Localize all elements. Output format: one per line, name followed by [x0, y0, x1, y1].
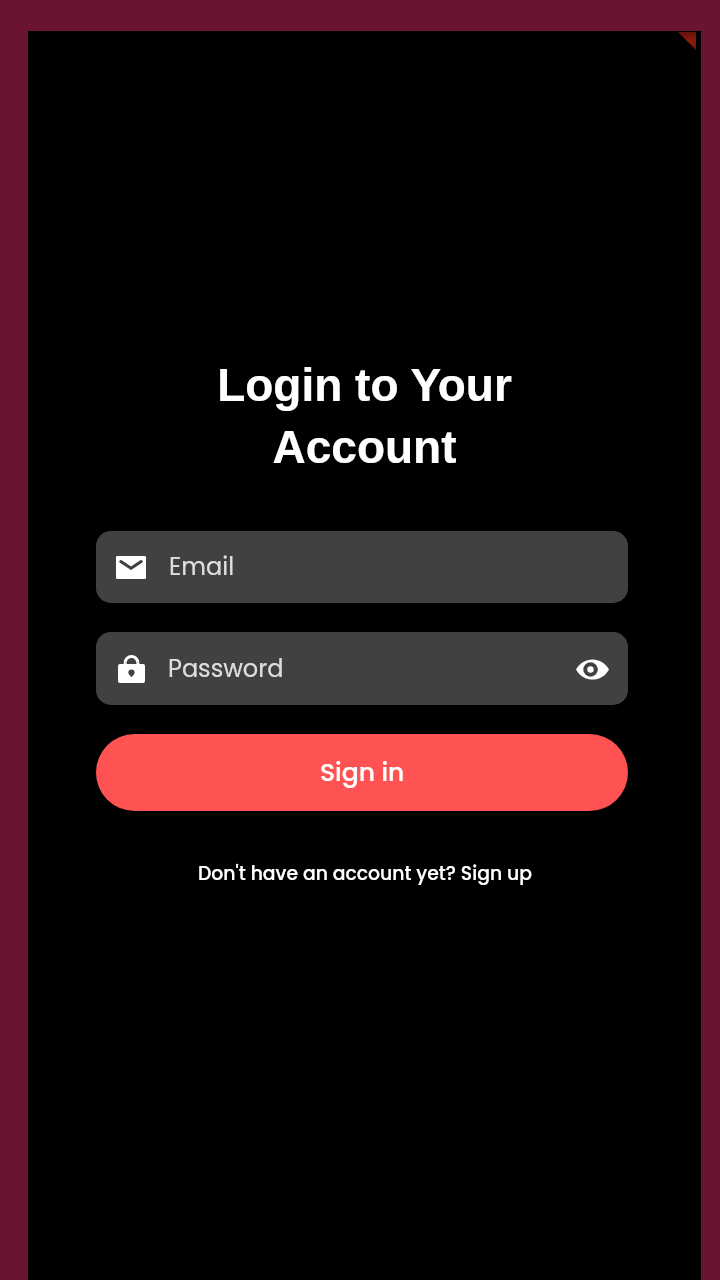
button[interactable]: Don't have an account yet? Sign up: [188, 856, 542, 890]
staticText: Email: [169, 550, 235, 584]
button[interactable]: Show password: [572, 649, 612, 689]
staticText: Login to Your Account: [217, 359, 512, 473]
button[interactable]: Email: [96, 531, 628, 603]
staticText: Sign in: [320, 755, 405, 790]
staticText: Don't have an account yet? Sign up: [198, 860, 532, 886]
button[interactable]: Password: [96, 632, 628, 705]
button[interactable]: Sign in: [96, 734, 628, 811]
staticText: Password: [168, 652, 284, 686]
